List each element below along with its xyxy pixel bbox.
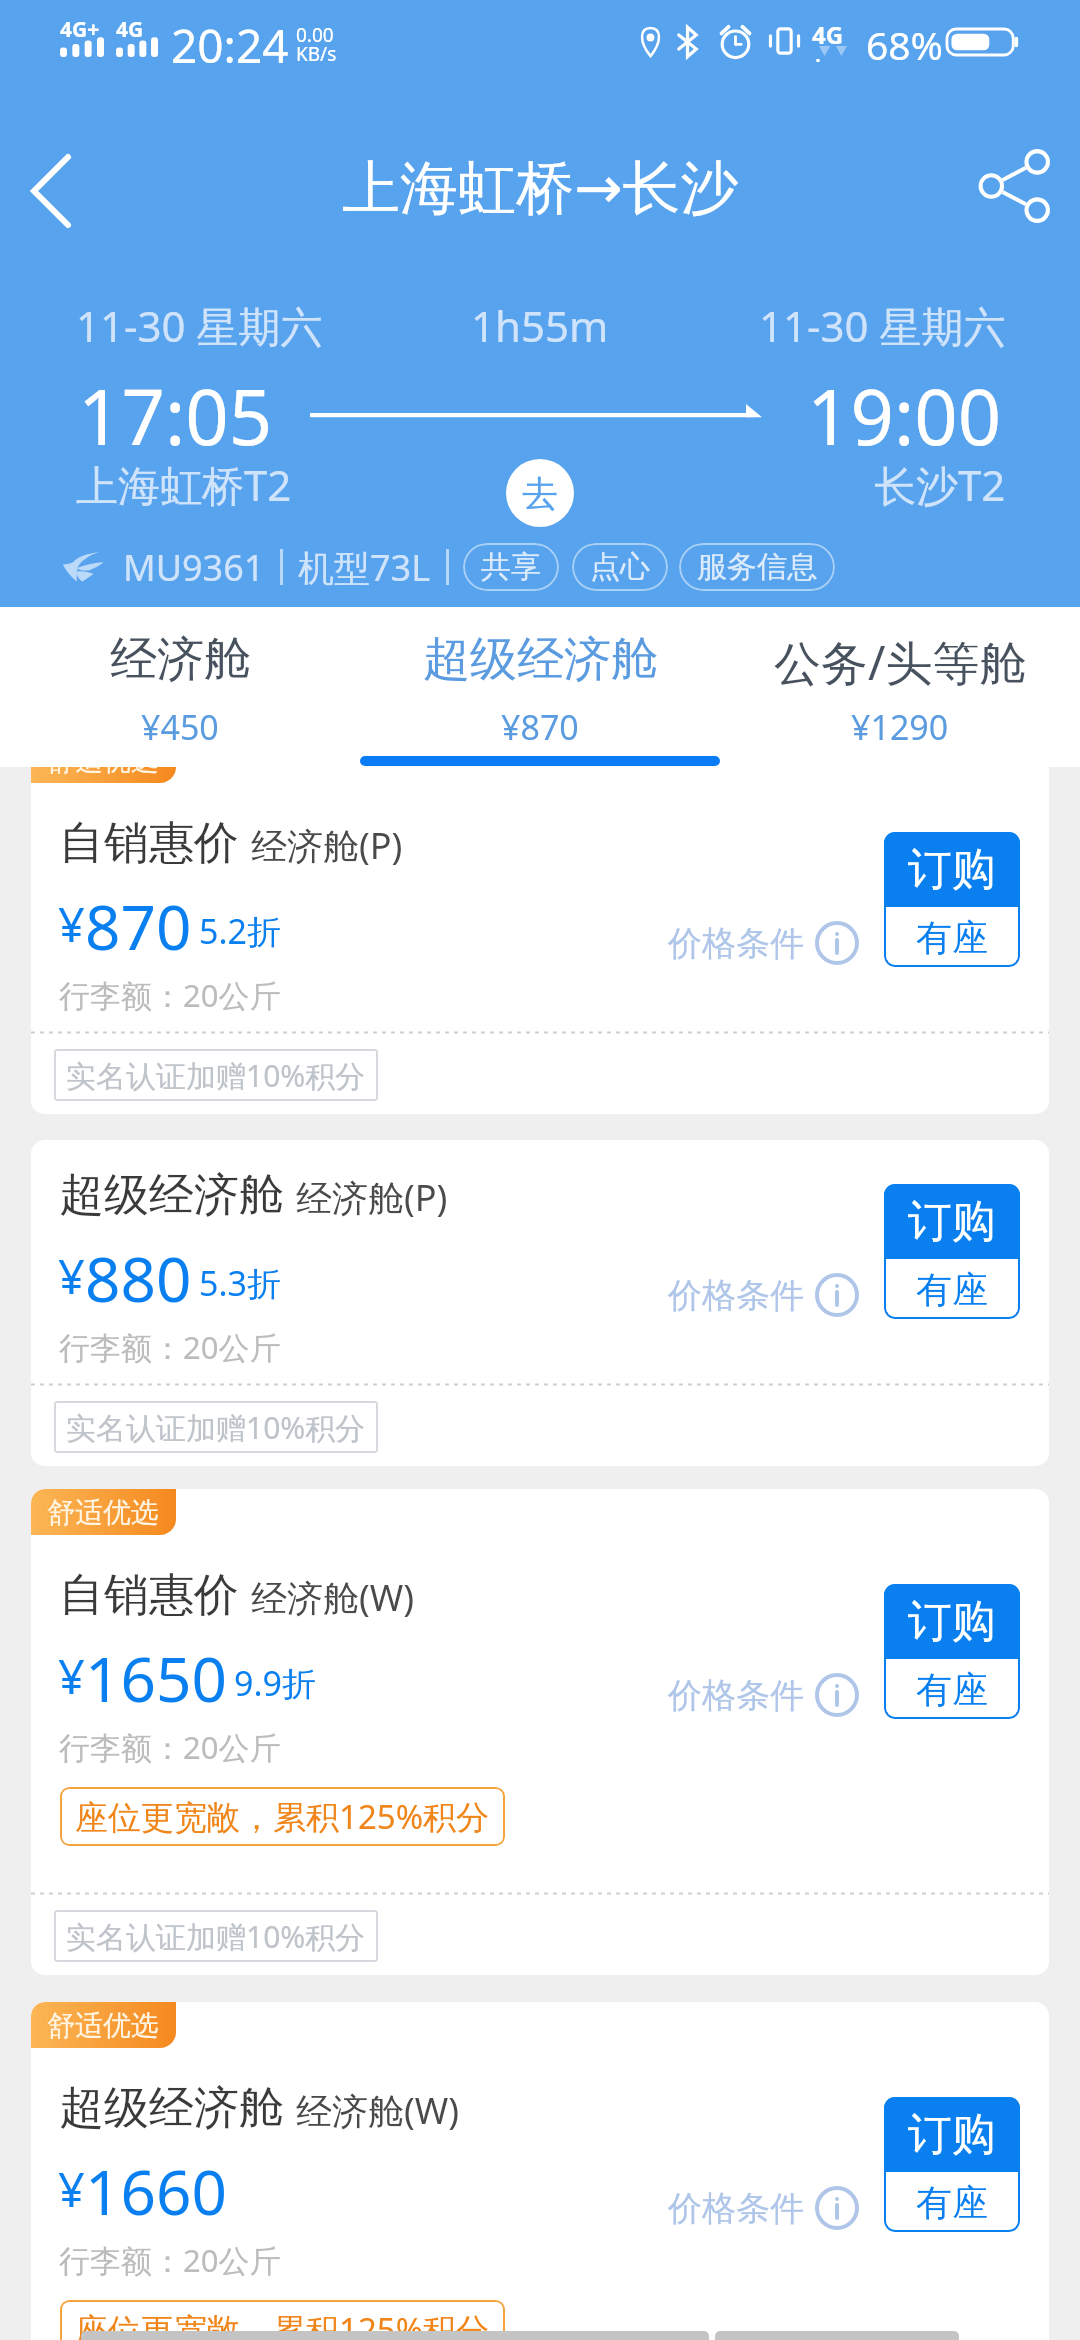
staticText: ¥ (58, 1644, 85, 1708)
button[interactable]: 公务/头等舱 (720, 607, 1080, 767)
staticText: KB/s (296, 41, 337, 67)
staticText: 超级经济舱 (423, 630, 658, 689)
staticText: 实名认证加赠10%积分 (66, 1407, 366, 1448)
staticText: 订购 (908, 2107, 996, 2162)
staticText: 有座 (916, 915, 988, 960)
button[interactable]: 订购 (884, 832, 1020, 967)
button[interactable]: 舒适优选 (31, 2002, 1049, 2340)
staticText: 共享 (481, 548, 541, 586)
staticText: 机型73L (298, 543, 431, 591)
button[interactable]: 点心 (572, 543, 668, 591)
staticText: 11-30 星期六 (76, 297, 323, 354)
staticText: 行李额：20公斤 (59, 1726, 281, 1768)
staticText: 舒适优选 (47, 2008, 159, 2043)
staticText: 有座 (916, 2180, 988, 2225)
staticText: 9.9折 (234, 1660, 317, 1706)
button[interactable]: Share (973, 144, 1057, 228)
staticText: 订购 (908, 1594, 996, 1649)
button[interactable]: 订购 (884, 1584, 1020, 1719)
staticText: 20:24 (171, 14, 289, 77)
staticText: 有座 (916, 1267, 988, 1312)
button[interactable]: 共享 (463, 543, 559, 591)
staticText: 68% (866, 18, 944, 71)
staticText: 880 (85, 1236, 192, 1316)
staticText: 5.2折 (199, 908, 282, 954)
staticText: 自销惠价 (59, 1567, 239, 1624)
staticText: 1650 (85, 1636, 227, 1716)
staticText: 4G+ (60, 15, 100, 44)
staticText: ¥ (58, 1244, 85, 1308)
button[interactable]: 服务信息 (679, 543, 835, 591)
staticText: 上海虹桥T2 (76, 456, 292, 513)
staticText: 经济舱(W) (296, 2086, 460, 2135)
button[interactable]: Back (10, 150, 92, 232)
staticText: ¥1290 (851, 704, 949, 750)
staticText: 经济舱(W) (251, 1573, 415, 1622)
staticText: 价格条件 (668, 1274, 804, 1317)
staticText: 经济舱 (110, 630, 251, 689)
staticText: 座位更宽敞，累积125%积分 (75, 1794, 490, 1839)
staticText: 去 (522, 471, 558, 516)
staticText: 订购 (908, 1194, 996, 1249)
staticText: 价格条件 (668, 2187, 804, 2230)
staticText: ¥ (58, 2157, 85, 2221)
button[interactable]: 去 (506, 459, 574, 527)
staticText: 5.3折 (199, 1260, 282, 1306)
staticText: 订购 (908, 842, 996, 897)
staticText: 17:05 (78, 364, 273, 468)
staticText: 价格条件 (668, 1674, 804, 1717)
staticText: 价格条件 (668, 922, 804, 965)
staticText: 4G† (812, 18, 854, 62)
staticText: 服务信息 (697, 548, 817, 586)
staticText: 舒适优选 (47, 1495, 159, 1530)
staticText: 自销惠价 (59, 815, 239, 872)
button[interactable]: 订购 (884, 2097, 1020, 2232)
staticText: 上海虹桥→长沙 (342, 152, 739, 225)
staticText: 870 (85, 884, 192, 964)
staticText: 实名认证加赠10%积分 (66, 1916, 366, 1957)
staticText: 超级经济舱 (59, 1167, 284, 1224)
staticText: 1660 (85, 2149, 227, 2229)
button[interactable]: 经济舱 (0, 607, 360, 767)
staticText: 长沙T2 (874, 456, 1006, 513)
staticText: 实名认证加赠10%积分 (66, 1055, 366, 1096)
staticText: 行李额：20公斤 (59, 974, 281, 1016)
staticText: 公务/头等舱 (774, 630, 1027, 694)
staticText: MU9361 (123, 543, 265, 591)
staticText: 行李额：20公斤 (59, 1326, 281, 1368)
staticText: ¥ (58, 892, 85, 956)
staticText: 舒适优选 (47, 743, 159, 778)
staticText: 19:00 (807, 364, 1002, 468)
staticText: 经济舱(P) (251, 821, 403, 870)
staticText: 超级经济舱 (59, 2080, 284, 2137)
staticText: 座位更宽敞，累积125%积分 (75, 2307, 490, 2340)
staticText: 有座 (916, 1667, 988, 1712)
staticText: 0.00 (296, 22, 334, 48)
staticText: ¥870 (501, 704, 579, 750)
button[interactable]: 舒适优选 (31, 1489, 1049, 1975)
button[interactable]: 超级经济舱 (360, 607, 720, 767)
staticText: 行李额：20公斤 (59, 2239, 281, 2281)
button[interactable]: 超级经济舱 (31, 1140, 1049, 1466)
staticText: 11-30 星期六 (759, 297, 1006, 354)
staticText: 1h55m (471, 297, 609, 354)
staticText: 点心 (590, 548, 650, 586)
staticText: ¥450 (141, 704, 219, 750)
staticText: 经济舱(P) (296, 1173, 448, 1222)
staticText: 4G (116, 15, 144, 44)
button[interactable]: 订购 (884, 1184, 1020, 1319)
button[interactable]: 舒适优选 (31, 737, 1049, 1114)
